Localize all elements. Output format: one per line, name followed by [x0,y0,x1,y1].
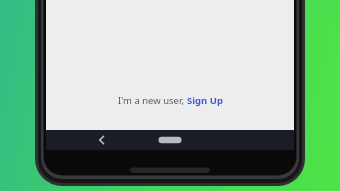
button[interactable]: Back [93,130,111,150]
button[interactable]: Home [155,130,185,150]
button[interactable]: Sign Up [187,94,223,107]
staticText: I'm a new user, [118,94,187,107]
staticText: Sign Up [187,94,223,107]
